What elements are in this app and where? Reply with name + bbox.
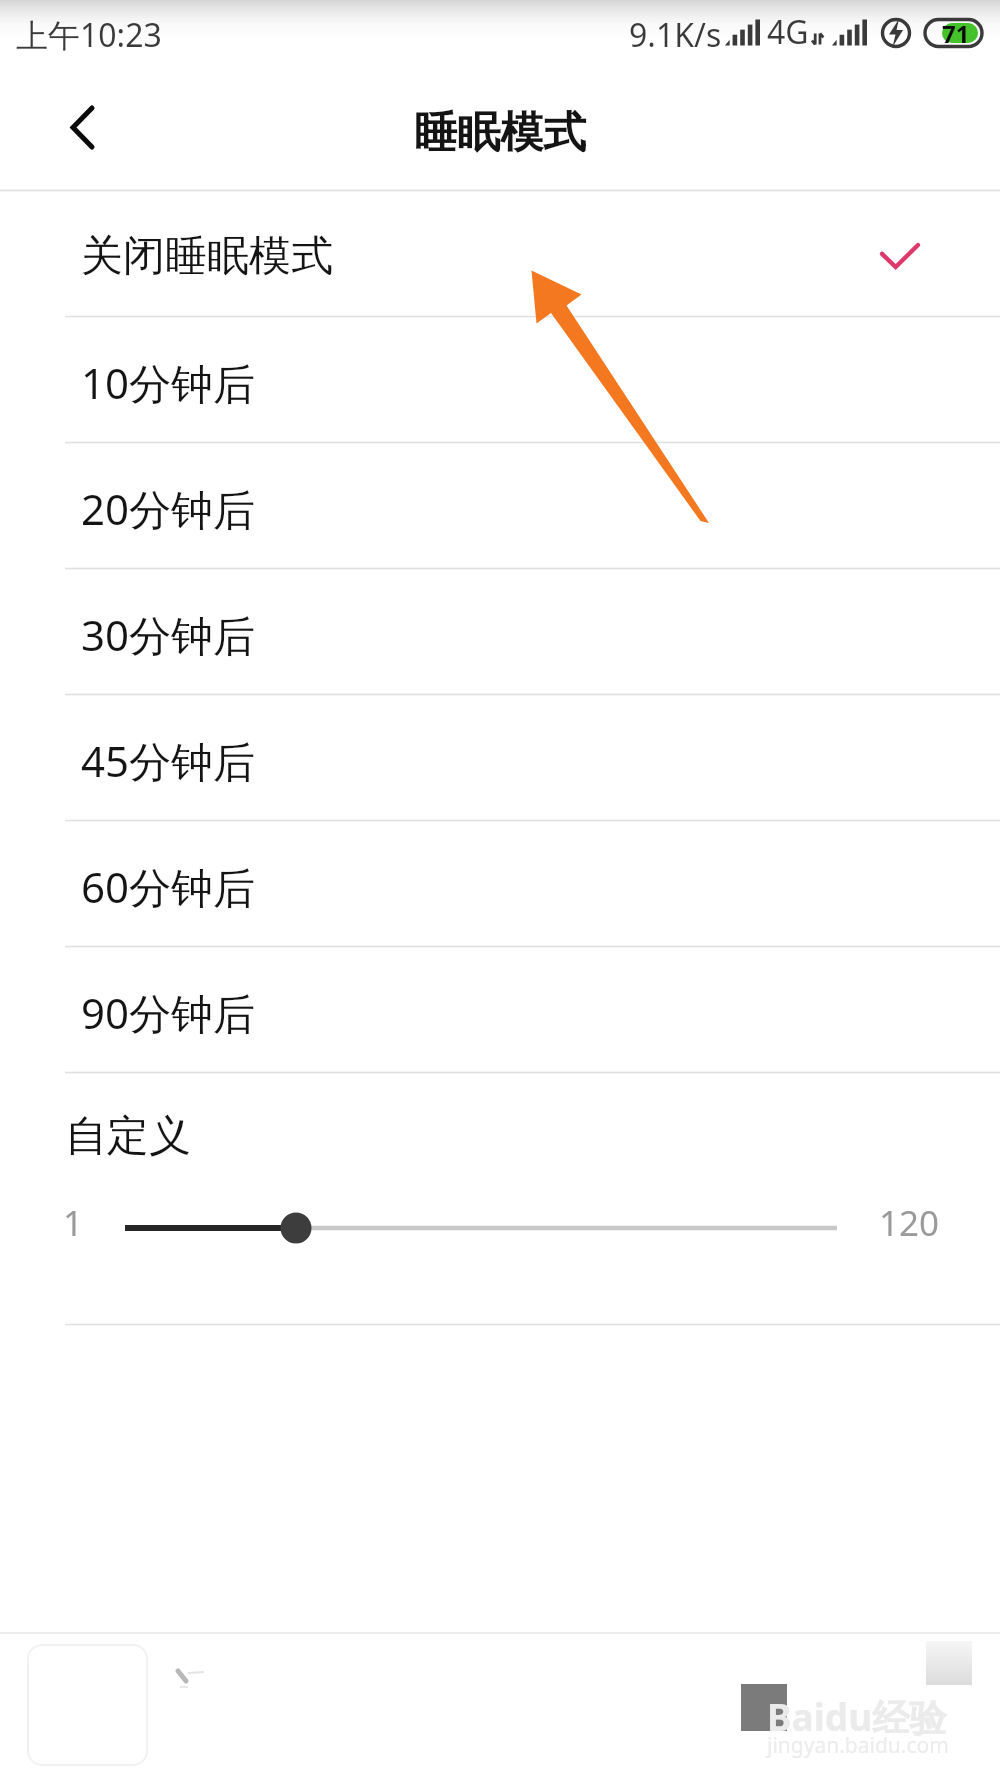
staticText: 上午10:23 [16,13,162,57]
staticText: jingyan.baidu.com [767,1731,949,1760]
staticText: 60分钟后 [81,858,256,915]
button[interactable]: 60分钟后 [0,821,1000,946]
staticText: 120 [879,1199,940,1247]
staticText: 30分钟后 [81,606,256,663]
button[interactable]: 30分钟后 [0,569,1000,694]
button[interactable]: 20分钟后 [0,443,1000,568]
button[interactable]: Back [0,58,134,190]
staticText: Baidu经验 [767,1691,947,1742]
staticText: 睡眠模式 [414,106,586,160]
staticText: 1 [63,1199,84,1247]
staticText: 90分钟后 [81,984,256,1041]
staticText: 71 [942,17,970,50]
button[interactable]: 10分钟后 [0,317,1000,442]
staticText: 20分钟后 [81,480,256,537]
button[interactable]: 90分钟后 [0,947,1000,1072]
button[interactable]: Sleep timer minutes slider [110,1204,852,1252]
staticText: 45分钟后 [81,732,256,789]
staticText: 9.1K/s [629,13,722,57]
button[interactable]: 关闭睡眠模式 [0,191,1000,316]
button[interactable]: 45分钟后 [0,695,1000,820]
staticText: 10分钟后 [81,354,256,411]
staticText: 4G [767,10,809,54]
staticText: 关闭睡眠模式 [81,230,333,283]
staticText: 自定义 [65,1110,191,1163]
